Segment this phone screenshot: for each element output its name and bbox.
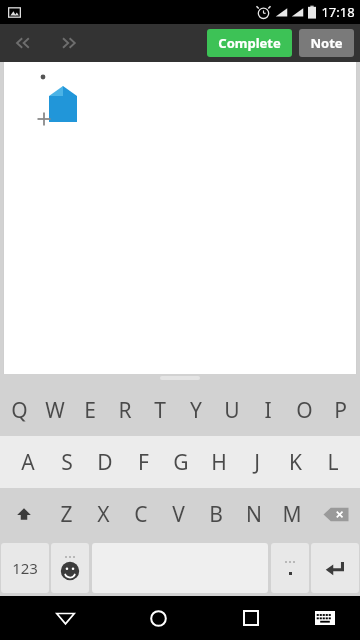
button[interactable]: I	[250, 384, 286, 436]
staticText: R	[118, 396, 132, 425]
staticText: S	[61, 448, 73, 477]
button[interactable]: Home	[126, 596, 190, 640]
button[interactable]: S	[47, 436, 86, 488]
button[interactable]: Back	[34, 596, 97, 640]
staticText: X	[97, 500, 110, 529]
button[interactable]: Emoji	[51, 543, 89, 593]
button[interactable]: D	[86, 436, 124, 488]
staticText: E	[84, 396, 96, 425]
button[interactable]: Q	[2, 384, 37, 436]
button[interactable]: T	[142, 384, 178, 436]
staticText: T	[154, 396, 166, 425]
button[interactable]: Numbers	[1, 543, 49, 593]
button[interactable]: Previous	[0, 24, 46, 62]
button[interactable]: M	[273, 488, 311, 540]
staticText: V	[172, 500, 185, 529]
button[interactable]: L	[314, 436, 352, 488]
button[interactable]: Y	[178, 384, 214, 436]
staticText: U	[224, 396, 240, 425]
button[interactable]: R	[107, 384, 142, 436]
button[interactable]	[3, 62, 357, 374]
button[interactable]: Complete	[207, 29, 292, 57]
staticText: Complete	[218, 34, 281, 52]
staticText: D	[97, 448, 113, 477]
staticText: W	[45, 396, 65, 425]
button[interactable]: E	[72, 384, 107, 436]
staticText: F	[138, 448, 149, 477]
button[interactable]: Backspace	[311, 488, 360, 540]
button[interactable]: O	[286, 384, 322, 436]
button[interactable]: U	[214, 384, 250, 436]
button[interactable]: Note	[299, 29, 354, 57]
staticText: Z	[60, 500, 73, 529]
staticText: L	[327, 448, 339, 477]
button[interactable]: J	[238, 436, 276, 488]
button[interactable]: K	[276, 436, 314, 488]
button[interactable]: Period	[271, 543, 309, 593]
button[interactable]: X	[85, 488, 122, 540]
button[interactable]: Enter	[311, 543, 359, 593]
staticText: N	[246, 500, 262, 529]
staticText: H	[211, 448, 227, 477]
staticText: 17:18	[321, 3, 355, 21]
staticText: O	[296, 396, 313, 425]
button[interactable]: P	[322, 384, 358, 436]
staticText: Q	[11, 396, 28, 425]
button[interactable]: Next	[46, 24, 92, 62]
button[interactable]: Recent apps	[219, 596, 283, 640]
button[interactable]: Shift	[0, 488, 48, 540]
staticText: G	[173, 448, 189, 477]
button[interactable]: Z	[48, 488, 85, 540]
staticText: K	[289, 448, 302, 477]
staticText: Y	[190, 396, 202, 425]
staticText: J	[254, 448, 260, 477]
button[interactable]: H	[200, 436, 238, 488]
button[interactable]: B	[197, 488, 235, 540]
staticText: I	[264, 396, 272, 425]
staticText: A	[21, 448, 35, 477]
staticText: M	[282, 500, 302, 529]
staticText: Note	[310, 34, 343, 52]
staticText: C	[134, 500, 148, 529]
button[interactable]: V	[159, 488, 197, 540]
staticText: B	[209, 500, 223, 529]
button[interactable]: G	[162, 436, 200, 488]
button[interactable]: N	[235, 488, 273, 540]
button[interactable]: F	[124, 436, 162, 488]
staticText: P	[334, 396, 347, 425]
button[interactable]: Switch keyboard	[293, 596, 357, 640]
button[interactable]: C	[122, 488, 159, 540]
button[interactable]: W	[37, 384, 72, 436]
button[interactable]: A	[8, 436, 47, 488]
staticText: 123	[12, 558, 38, 578]
